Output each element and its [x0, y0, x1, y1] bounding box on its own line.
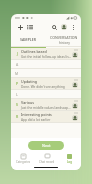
staticText: Interesting points [21, 112, 52, 117]
staticText: Chat record [39, 160, 55, 164]
button[interactable]: List view [25, 22, 35, 32]
button[interactable]: M [11, 69, 81, 77]
staticText: A [16, 62, 19, 67]
staticText: Various [21, 100, 34, 105]
staticText: J [17, 51, 18, 56]
staticText: Next [42, 143, 51, 148]
staticText: Outlines based [21, 49, 47, 54]
staticText: L [16, 92, 18, 97]
staticText: history [59, 40, 70, 45]
button[interactable]: Log [58, 152, 81, 165]
button[interactable]: J [11, 48, 81, 59]
button[interactable]: P [11, 78, 81, 89]
button[interactable]: A [11, 60, 81, 68]
staticText: App did a lot earlier [21, 118, 51, 122]
staticText: SAMPLER [20, 37, 37, 42]
button[interactable]: More options [69, 23, 77, 31]
staticText: M [15, 71, 19, 76]
button[interactable]: New [15, 22, 25, 32]
staticText: Categories [16, 160, 31, 164]
staticText: Log [67, 160, 72, 164]
staticText: R [16, 114, 19, 119]
button[interactable]: Next [28, 141, 64, 150]
button[interactable]: S [11, 99, 81, 110]
button[interactable]: L [11, 90, 81, 98]
staticText: Updating [21, 79, 37, 84]
button[interactable]: Categories [11, 152, 35, 165]
staticText: Got the initial follow-up ideas listed [21, 55, 72, 59]
button[interactable]: SAMPLER [11, 33, 46, 46]
button[interactable]: R [11, 111, 81, 122]
staticText: CONVERSATION [50, 35, 78, 40]
button[interactable]: Search [49, 22, 59, 32]
button[interactable]: Chat record [35, 152, 58, 165]
staticText: S [16, 102, 18, 107]
button[interactable]: Account [59, 22, 69, 32]
button[interactable]: CONVERSATION [46, 33, 81, 46]
staticText: Just the middle values landscaped and sh… [21, 106, 72, 110]
staticText: P [16, 81, 19, 86]
staticText: Done. We didn't see anything [21, 85, 65, 89]
